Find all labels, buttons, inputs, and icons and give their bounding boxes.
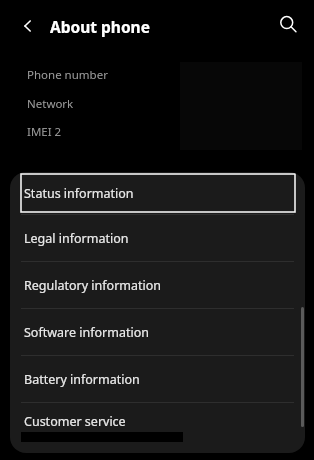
button[interactable]: Legal information	[10, 215, 305, 261]
button[interactable]: Search	[272, 8, 304, 40]
staticText: Customer service	[24, 413, 126, 430]
button[interactable]: Battery information	[10, 356, 305, 402]
staticText: Status information	[24, 185, 134, 202]
staticText: Regulatory information	[24, 277, 162, 294]
button[interactable]: Regulatory information	[10, 262, 305, 308]
staticText: Legal information	[24, 230, 129, 247]
button[interactable]: Phone number	[10, 64, 305, 86]
button[interactable]: Software information	[10, 309, 305, 355]
staticText: Battery information	[24, 371, 140, 388]
button[interactable]: Status information	[10, 172, 305, 214]
staticText: Software information	[24, 324, 149, 341]
staticText: Network	[27, 96, 74, 112]
button[interactable]: Customer service	[10, 403, 305, 449]
button[interactable]: IMEI 2	[10, 121, 305, 143]
button[interactable]: Back	[12, 10, 44, 42]
staticText: About phone	[50, 16, 150, 37]
button[interactable]: Network	[10, 93, 305, 115]
staticText: IMEI 2	[27, 124, 62, 140]
staticText: Phone number	[27, 67, 108, 83]
